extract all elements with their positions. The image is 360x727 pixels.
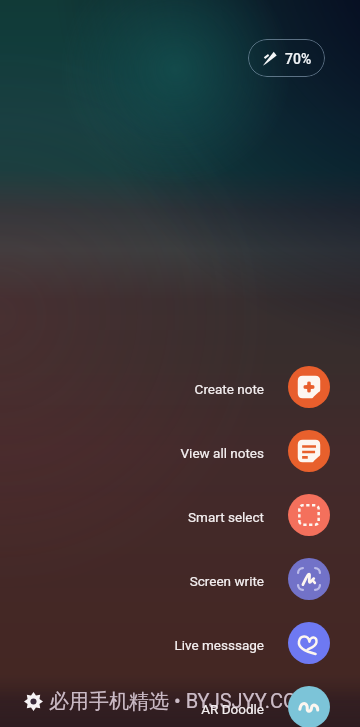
button[interactable]: View all notes: [150, 430, 330, 472]
staticText: Create note: [194, 381, 264, 397]
button[interactable]: Create note: [150, 366, 330, 408]
staticText: 必用手机精选 • BYJSJYY.COM: [49, 689, 315, 714]
staticText: Smart select: [188, 509, 264, 525]
button[interactable]: Smart select: [150, 494, 330, 536]
staticText: AR Doodle: [201, 701, 264, 717]
staticText: View all notes: [180, 445, 264, 461]
button[interactable]: S Pen battery 70 percent: [248, 39, 325, 77]
staticText: Screen write: [189, 573, 264, 589]
button[interactable]: Screen write: [150, 558, 330, 600]
staticText: Live messsage: [174, 637, 264, 653]
staticText: 70%: [285, 51, 312, 67]
button[interactable]: Live messsage: [150, 622, 330, 664]
button[interactable]: AR Doodle: [150, 686, 330, 727]
